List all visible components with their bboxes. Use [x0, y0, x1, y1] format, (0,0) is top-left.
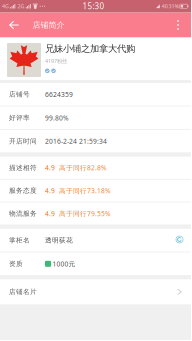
- staticText: 6624359: [45, 90, 73, 99]
- staticText: 高于同行73.18%: [59, 186, 111, 195]
- staticText: 高于同行79.55%: [59, 209, 111, 218]
- staticText: 描述相符: [9, 164, 37, 172]
- staticText: 4197粉丝: [45, 57, 67, 65]
- staticText: 店铺号: [9, 90, 30, 98]
- staticText: 开店时间: [9, 137, 37, 145]
- button[interactable]: 更多: [167, 12, 189, 37]
- staticText: 服务态度: [9, 187, 37, 195]
- button[interactable]: 客服: [175, 235, 184, 244]
- button[interactable]: 店铺名片: [0, 279, 191, 304]
- staticText: 99.80%: [45, 113, 69, 122]
- staticText: 2016-2-24 21:59:34: [45, 137, 107, 146]
- button[interactable]: 返回: [2, 12, 25, 37]
- staticText: 掌柜名: [9, 236, 30, 244]
- staticText: 31%: [168, 3, 178, 10]
- staticText: 透明荻花: [45, 236, 73, 244]
- staticText: 店铺名片: [9, 288, 37, 296]
- staticText: 好评率: [9, 114, 30, 122]
- staticText: 店铺简介: [32, 20, 64, 30]
- staticText: 兄妹小铺之加拿大代购: [45, 43, 135, 54]
- staticText: 40: [162, 3, 168, 10]
- staticText: 15:30: [82, 1, 104, 11]
- staticText: 物流服务: [9, 209, 37, 218]
- staticText: 1000元: [52, 259, 75, 268]
- staticText: 高于同行82.8%: [59, 163, 107, 172]
- staticText: 资质: [9, 260, 23, 268]
- staticText: 2G: [17, 3, 24, 10]
- staticText: 4.9: [45, 163, 55, 172]
- staticText: 4.9: [45, 186, 55, 195]
- button[interactable]: 兄妹小铺之加拿大代购: [0, 37, 191, 80]
- staticText: 4.9: [45, 209, 55, 218]
- staticText: 4G: [2, 3, 9, 10]
